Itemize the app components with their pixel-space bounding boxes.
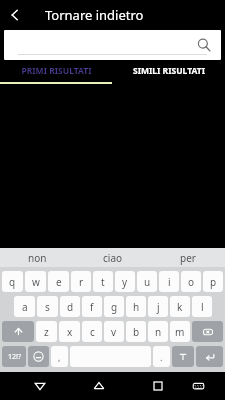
staticText: v [111,325,117,339]
staticText: l [201,300,204,314]
button[interactable]: o [181,271,201,292]
button[interactable]: j [148,296,168,317]
button[interactable]: v [104,321,124,342]
button[interactable]: c [82,321,102,342]
button[interactable]: Shift [2,321,34,342]
staticText: y [122,275,128,289]
button[interactable]: 12!? [2,346,26,367]
button[interactable]: Search [195,36,213,54]
button[interactable]: g [104,296,124,317]
staticText: x [67,325,73,339]
button[interactable]: Emoji [28,346,49,367]
staticText: k [177,300,183,314]
button[interactable]: Enter [196,346,223,367]
button[interactable]: t [93,271,113,292]
staticText: e [56,275,62,289]
button[interactable]: Backspace [192,321,223,342]
button[interactable]: h [126,296,146,317]
staticText: . [160,351,163,363]
button[interactable]: f [82,296,102,317]
staticText: b [133,325,140,339]
button[interactable]: d [60,296,80,317]
button[interactable]: z [36,321,57,342]
button[interactable]: per [150,248,225,267]
staticText: SIMILI RISULTATI [133,65,205,77]
staticText: g [111,300,118,314]
staticText: PRIMI RISULTATI [21,65,92,77]
button[interactable]: Back [26,372,54,400]
staticText: non [28,251,47,265]
button[interactable]: Back [0,0,29,29]
staticText: 12!? [8,352,21,362]
button[interactable]: k [170,296,190,317]
button[interactable]: a [14,296,35,317]
button[interactable]: ciao [75,248,150,267]
button[interactable]: r [71,271,91,292]
button[interactable]: SIMILI RISULTATI [112,60,225,82]
staticText: q [9,275,16,289]
staticText: , [58,351,61,363]
other: Text options [172,346,194,367]
button[interactable]: n [148,321,168,342]
button[interactable]: s [37,296,58,317]
button[interactable]: m [170,321,190,342]
staticText: t [101,275,105,289]
staticText: per [180,251,196,265]
button[interactable]: u [137,271,157,292]
button[interactable]: PRIMI RISULTATI [0,60,112,82]
staticText: p [210,275,217,289]
staticText: c [90,325,95,339]
staticText: f [90,300,94,314]
button[interactable]: x [59,321,80,342]
other: Emoji [28,346,49,367]
button[interactable]: q [2,271,23,292]
staticText: d [67,300,74,314]
button[interactable]: , [51,346,68,367]
staticText: n [155,325,162,339]
button[interactable]: Home [85,372,113,400]
other: Backspace [192,321,223,342]
button[interactable]: Text options [172,346,194,367]
staticText: w [32,275,40,289]
button[interactable]: b [126,321,146,342]
staticText: Tornare indietro [45,6,144,24]
button[interactable]: y [115,271,135,292]
button[interactable]: l [192,296,212,317]
button[interactable]: p [203,271,223,292]
button[interactable]: . [153,346,170,367]
staticText: j [157,300,160,314]
button[interactable]: Recent apps [144,372,172,400]
staticText: m [175,325,185,339]
staticText: ciao [103,251,123,265]
staticText: s [45,300,50,314]
button[interactable]: Search [4,30,221,60]
staticText: i [168,275,171,289]
other: Enter [196,346,223,367]
staticText: u [144,275,151,289]
other: Shift [2,321,34,342]
button[interactable]: non [0,248,75,267]
button[interactable]: Hide keyboard [184,372,212,400]
button[interactable]: w [25,271,46,292]
button[interactable]: e [48,271,69,292]
staticText: a [22,300,28,314]
staticText: o [188,275,195,289]
staticText: r [79,275,84,289]
staticText: h [133,300,140,314]
button[interactable]: i [159,271,179,292]
staticText: z [44,325,49,339]
